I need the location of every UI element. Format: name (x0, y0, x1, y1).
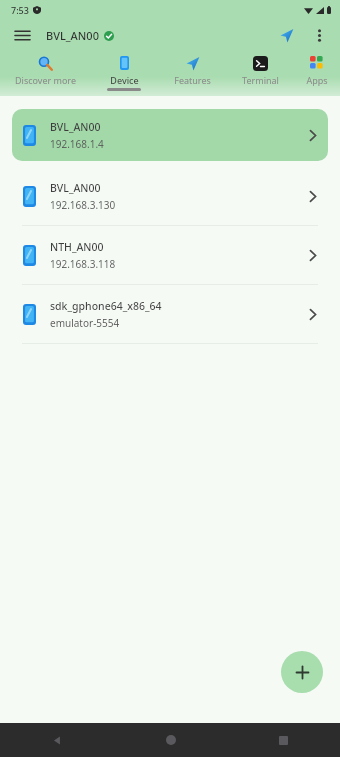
staticText: Device (110, 74, 139, 86)
staticText: BVL_AN00 (46, 28, 99, 43)
button[interactable]: Home (114, 723, 227, 757)
staticText: sdk_gphone64_x86_64 (50, 299, 162, 313)
staticText: 192.168.3.130 (50, 198, 116, 212)
staticText: Features (174, 74, 211, 86)
button[interactable]: More options (306, 22, 332, 48)
button[interactable]: Recents (227, 723, 340, 757)
staticText: 192.168.1.4 (50, 137, 104, 151)
staticText: BVL_AN00 (50, 181, 101, 195)
staticText: Discover more (15, 74, 76, 86)
staticText: NTH_AN00 (50, 240, 104, 254)
button[interactable]: BVL_AN00 (0, 167, 340, 225)
button[interactable]: Discover more (0, 50, 90, 96)
button[interactable]: Back (0, 723, 114, 757)
button[interactable]: Send (272, 21, 300, 49)
staticText: Apps (306, 74, 328, 86)
button[interactable]: Features (158, 50, 226, 96)
staticText: Terminal (242, 74, 279, 86)
button[interactable]: Terminal (226, 50, 294, 96)
staticText: 7:53 (11, 4, 29, 16)
button[interactable]: BVL_AN00 (12, 109, 328, 161)
button[interactable]: Menu (8, 21, 36, 49)
button[interactable]: sdk_gphone64_x86_64 (0, 285, 340, 343)
staticText: BVL_AN00 (50, 120, 101, 134)
staticText: 192.168.3.118 (50, 257, 116, 271)
button[interactable]: Apps (294, 50, 340, 96)
button[interactable]: Device (90, 50, 158, 96)
button[interactable]: NTH_AN00 (0, 226, 340, 284)
staticText: emulator-5554 (50, 316, 120, 330)
button[interactable]: Add device (281, 651, 323, 693)
